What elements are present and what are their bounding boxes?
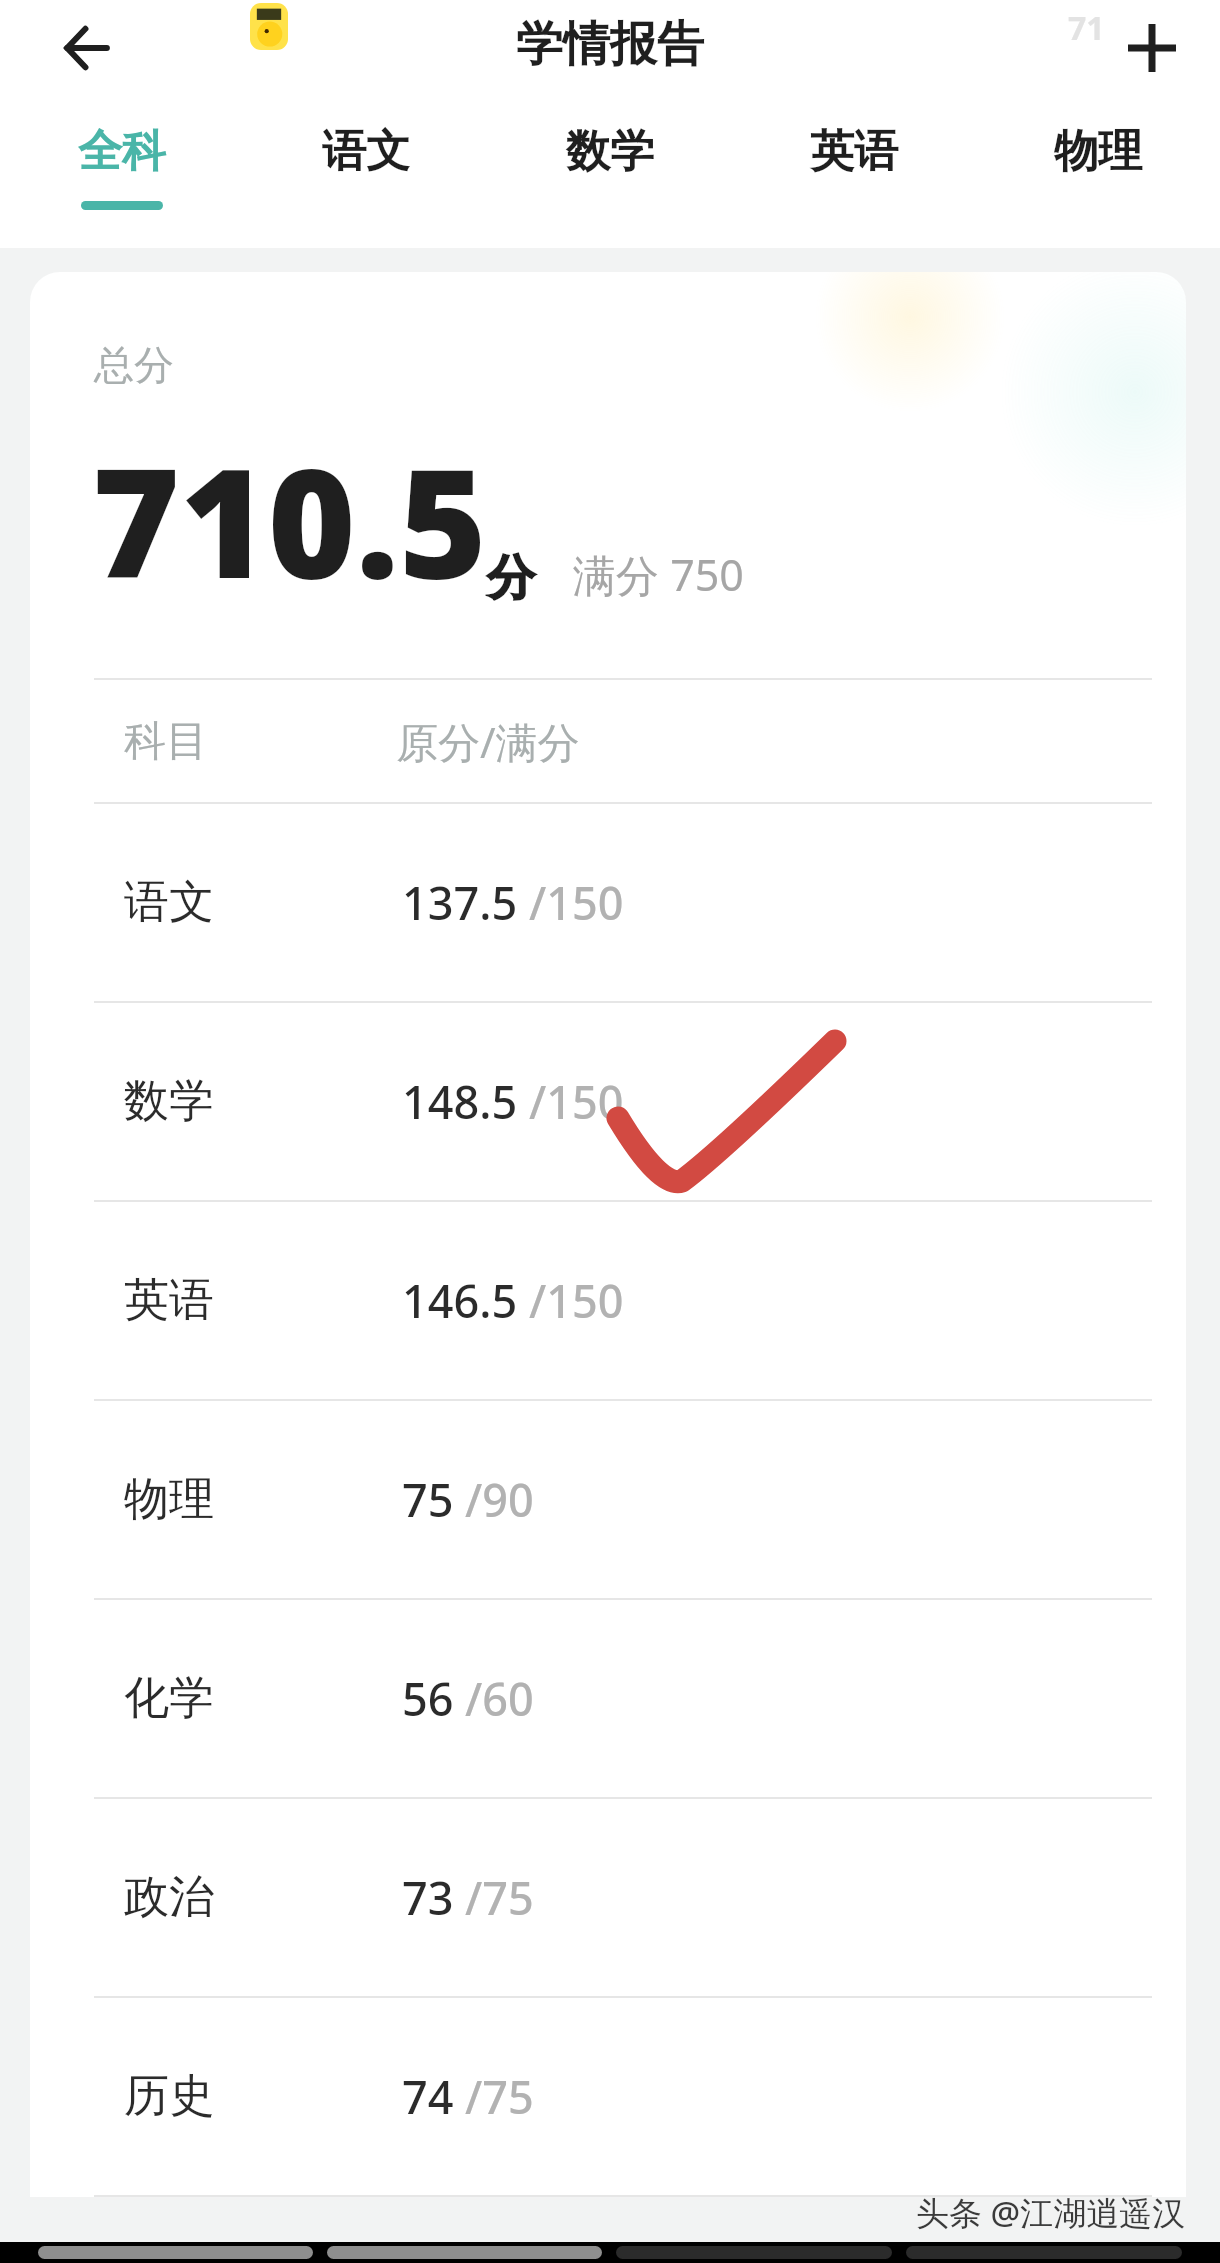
staticText: 数学 <box>124 1073 214 1130</box>
staticText: 历史 <box>124 2068 214 2125</box>
staticText: 总分 <box>94 340 174 390</box>
staticText: 语文 <box>124 874 214 931</box>
staticText: 英语 <box>124 1272 214 1329</box>
button[interactable]: 语文 <box>244 96 488 248</box>
staticText: /150 <box>529 1071 624 1132</box>
button[interactable]: 数学 <box>488 96 732 248</box>
staticText: 全科 <box>78 124 166 179</box>
button[interactable]: 全科 <box>0 96 244 248</box>
staticText: /60 <box>465 1668 534 1729</box>
staticText: 数学 <box>566 124 654 179</box>
button[interactable]: Add <box>1104 0 1200 96</box>
staticText: 148.5 <box>402 1071 518 1132</box>
staticText: 语文 <box>322 124 410 179</box>
button[interactable]: 化学 <box>30 1600 1186 1797</box>
staticText: 710.5 <box>92 418 487 622</box>
staticText: 科目 <box>124 715 208 768</box>
staticText: 学情报告 <box>516 15 704 74</box>
staticText: /90 <box>465 1469 534 1530</box>
button[interactable]: 语文 <box>30 804 1186 1001</box>
staticText: 73 <box>402 1867 454 1928</box>
staticText: /150 <box>529 872 624 933</box>
staticText: 56 <box>402 1668 454 1729</box>
button[interactable]: 物理 <box>976 96 1220 248</box>
staticText: 政治 <box>124 1869 214 1926</box>
staticText: 头条 @江湖逍遥汉 <box>916 2190 1186 2235</box>
button[interactable]: 英语 <box>30 1202 1186 1399</box>
button[interactable]: 历史 <box>30 1998 1186 2195</box>
staticText: 英语 <box>810 124 898 179</box>
staticText: 满分 750 <box>573 545 744 604</box>
staticText: 75 <box>402 1469 454 1530</box>
button[interactable]: 英语 <box>732 96 976 248</box>
button[interactable]: 政治 <box>30 1799 1186 1996</box>
staticText: 146.5 <box>402 1270 518 1331</box>
staticText: 化学 <box>124 1670 214 1727</box>
button[interactable]: 物理 <box>30 1401 1186 1598</box>
staticText: 71 <box>1068 6 1105 50</box>
staticText: 物理 <box>1054 124 1142 179</box>
staticText: /75 <box>465 1867 534 1928</box>
button[interactable]: Back <box>30 0 130 96</box>
staticText: 原分/满分 <box>396 713 580 770</box>
staticText: /150 <box>529 1270 624 1331</box>
staticText: 74 <box>402 2066 454 2127</box>
staticText: 分 <box>487 548 535 608</box>
staticText: 137.5 <box>402 872 518 933</box>
staticText: 物理 <box>124 1471 214 1528</box>
button[interactable]: 数学 <box>30 1003 1186 1200</box>
staticText: /75 <box>465 2066 534 2127</box>
